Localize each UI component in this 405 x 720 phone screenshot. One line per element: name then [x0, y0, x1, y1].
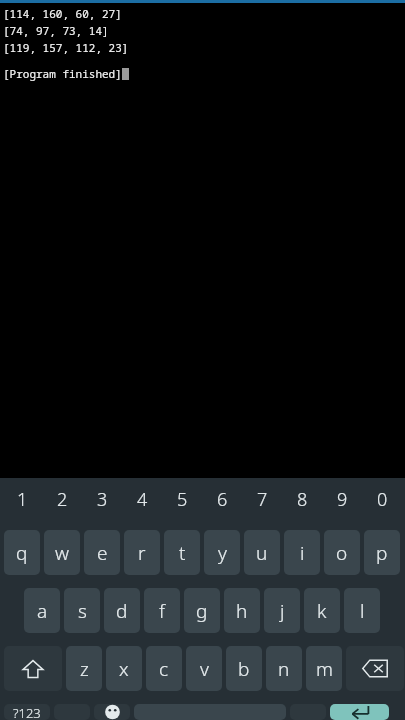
staticText: [119, 157, 112, 23] — [3, 40, 129, 55]
button[interactable]: h — [224, 588, 260, 633]
button[interactable]: k — [304, 588, 340, 633]
staticText: 5 — [177, 487, 188, 512]
staticText: b — [238, 656, 250, 682]
staticText: e — [97, 540, 108, 566]
staticText: k — [317, 598, 327, 624]
button[interactable]: b — [226, 646, 262, 691]
staticText: d — [116, 598, 128, 624]
staticText: 0 — [377, 487, 388, 512]
button[interactable]: Backspace — [346, 646, 404, 691]
staticText: 3 — [97, 487, 108, 512]
staticText: r — [138, 540, 146, 566]
button[interactable]: r — [124, 530, 160, 575]
staticText: 4 — [137, 487, 148, 512]
button[interactable]: a — [24, 588, 60, 633]
button[interactable]: z — [66, 646, 102, 691]
button[interactable]: 5 — [164, 484, 200, 514]
button[interactable]: 8 — [284, 484, 320, 514]
button[interactable]: w — [44, 530, 80, 575]
staticText: w — [55, 540, 69, 566]
staticText: 9 — [337, 487, 348, 512]
staticText: y — [218, 540, 227, 566]
staticText: s — [78, 598, 87, 624]
staticText: x — [119, 656, 129, 682]
button[interactable]: 0 — [364, 484, 400, 514]
staticText: f — [159, 598, 165, 624]
button[interactable]: 1 — [4, 484, 40, 514]
button[interactable]: y — [204, 530, 240, 575]
staticText: g — [196, 598, 208, 624]
staticText: o — [336, 540, 348, 566]
staticText: u — [256, 540, 268, 566]
button[interactable]: j — [264, 588, 300, 633]
staticText: c — [159, 656, 169, 682]
button[interactable]: 2 — [44, 484, 80, 514]
button[interactable]: 6 — [204, 484, 240, 514]
button[interactable]: 3 — [84, 484, 120, 514]
button[interactable]: n — [266, 646, 302, 691]
staticText: l — [360, 598, 365, 624]
staticText: 1 — [17, 487, 28, 512]
button[interactable]: e — [84, 530, 120, 575]
staticText: j — [280, 598, 285, 624]
staticText: n — [278, 656, 290, 682]
staticText: a — [37, 598, 48, 624]
button[interactable]: o — [324, 530, 360, 575]
button[interactable]: 7 — [244, 484, 280, 514]
staticText: [74, 97, 73, 14] — [3, 23, 109, 38]
button[interactable]: g — [184, 588, 220, 633]
button[interactable]: 9 — [324, 484, 360, 514]
button[interactable]: d — [104, 588, 140, 633]
staticText: ?123 — [13, 704, 41, 720]
staticText: 7 — [257, 487, 268, 512]
button[interactable]: x — [106, 646, 142, 691]
staticText: i — [300, 540, 305, 566]
button[interactable]: u — [244, 530, 280, 575]
staticText: z — [80, 656, 89, 682]
staticText: [114, 160, 60, 27] — [3, 6, 122, 21]
staticText: [Program finished] — [3, 66, 122, 81]
button[interactable]: l — [344, 588, 380, 633]
staticText: q — [16, 540, 28, 566]
staticText: h — [236, 598, 248, 624]
button[interactable]: m — [306, 646, 342, 691]
button[interactable]: i — [284, 530, 320, 575]
staticText: v — [200, 656, 209, 682]
button[interactable]: t — [164, 530, 200, 575]
staticText: 6 — [217, 487, 228, 512]
button[interactable]: ?123 — [4, 704, 50, 720]
staticText: p — [376, 540, 388, 566]
button[interactable]: v — [186, 646, 222, 691]
staticText: t — [179, 540, 186, 566]
staticText: 8 — [297, 487, 308, 512]
button[interactable]: q — [4, 530, 40, 575]
button[interactable]: s — [64, 588, 100, 633]
staticText: 2 — [57, 487, 68, 512]
button[interactable]: 4 — [124, 484, 160, 514]
button[interactable]: c — [146, 646, 182, 691]
staticText: m — [316, 656, 333, 682]
button[interactable]: Shift — [4, 646, 62, 691]
button[interactable]: Enter — [330, 704, 389, 720]
button[interactable]: p — [364, 530, 400, 575]
button[interactable]: f — [144, 588, 180, 633]
button[interactable]: Emoji — [94, 704, 130, 720]
